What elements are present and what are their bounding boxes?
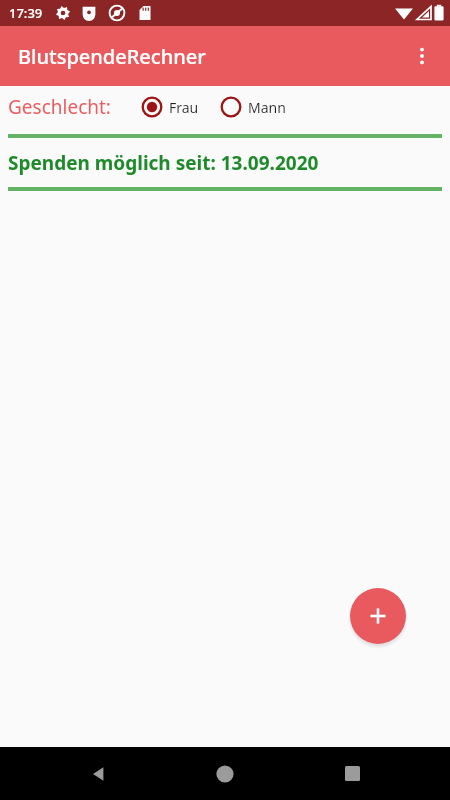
button[interactable]: Frau (140, 95, 199, 119)
button[interactable]: Add entry (350, 588, 406, 644)
button[interactable]: More options (402, 36, 442, 76)
button[interactable]: Mann (219, 95, 286, 119)
button[interactable]: Recents (324, 747, 380, 800)
staticText: Mann (248, 98, 286, 117)
button[interactable]: Home (197, 747, 253, 800)
staticText: Frau (169, 98, 199, 117)
staticText: BlutspendeRechner (18, 43, 206, 70)
button[interactable]: Back (71, 747, 127, 800)
staticText: Spenden möglich seit: 13.09.2020 (8, 150, 319, 176)
staticText: 17:39 (9, 4, 43, 22)
staticText: Geschlecht: (8, 94, 111, 120)
